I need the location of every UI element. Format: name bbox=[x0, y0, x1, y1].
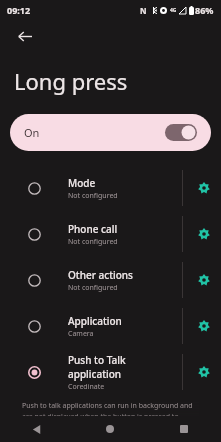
button[interactable]: Other actions bbox=[0, 257, 221, 303]
button[interactable]: Settings for Push to Talk application bbox=[187, 349, 221, 395]
staticText: Camera bbox=[68, 329, 94, 339]
button[interactable]: Application bbox=[0, 303, 221, 349]
staticText: Other actions bbox=[68, 268, 133, 282]
staticText: Push to talk applications can run in bac… bbox=[22, 401, 199, 431]
staticText: Mode bbox=[68, 176, 96, 190]
staticText: N bbox=[140, 5, 147, 16]
button[interactable]: On bbox=[10, 114, 211, 151]
staticText: Long press bbox=[14, 66, 128, 96]
staticText: Application bbox=[68, 314, 122, 328]
button[interactable]: Settings for Other actions bbox=[187, 257, 221, 303]
staticText: Not configured bbox=[68, 283, 118, 293]
button[interactable]: Back bbox=[0, 416, 73, 442]
button[interactable]: Back bbox=[8, 20, 40, 52]
staticText: Not configured bbox=[68, 237, 118, 247]
button[interactable]: Settings for Phone call bbox=[187, 211, 221, 257]
button[interactable]: Recent apps bbox=[147, 416, 221, 442]
button[interactable]: Push to Talk application bbox=[0, 349, 221, 395]
staticText: 4G bbox=[170, 7, 177, 14]
staticText: Not configured bbox=[68, 191, 118, 201]
staticText: 86% bbox=[195, 4, 214, 16]
staticText: 09:12 bbox=[7, 4, 31, 16]
staticText: On bbox=[24, 125, 40, 140]
staticText: Coredinate bbox=[68, 382, 105, 392]
button[interactable]: Mode bbox=[0, 165, 221, 211]
staticText: Phone call bbox=[68, 222, 118, 236]
button[interactable]: Settings for Mode bbox=[187, 165, 221, 211]
staticText: Push to Talk application bbox=[68, 353, 178, 381]
button[interactable]: Home bbox=[73, 416, 147, 442]
button[interactable]: Settings for Application bbox=[187, 303, 221, 349]
button[interactable]: Phone call bbox=[0, 211, 221, 257]
